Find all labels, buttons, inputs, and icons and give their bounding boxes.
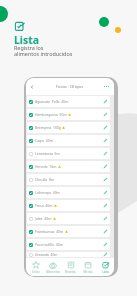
staticText: Pavo trufilla 40m — [35, 242, 63, 247]
staticText: Aguacate Pollo 40m — [35, 99, 69, 104]
staticText: Frutos · 38 tipos — [35, 84, 104, 89]
staticText: Hamburguesa 50m — [35, 112, 67, 117]
button[interactable]: Inicio — [27, 261, 44, 274]
button[interactable]: Hamburguesa 50m — [27, 109, 110, 120]
button[interactable]: Pavo trufilla 40m — [27, 239, 110, 250]
staticText: Menús — [83, 270, 93, 274]
staticText: Jalea 40m — [35, 216, 52, 221]
button[interactable]: Fresa 40m — [27, 200, 110, 211]
button[interactable]: Edit — [103, 151, 108, 156]
button[interactable]: Jalea 40m — [27, 213, 110, 224]
staticText: Recetas — [65, 270, 76, 274]
button[interactable]: Edit — [103, 229, 108, 234]
button[interactable]: Chirulla 8m — [27, 174, 110, 185]
button[interactable]: Recetas — [62, 261, 79, 274]
staticText: Alimentos — [46, 270, 60, 274]
button[interactable]: Edit — [103, 252, 108, 257]
button[interactable]: Granada 40m — [27, 252, 110, 257]
staticText: Lista — [102, 270, 109, 274]
button[interactable]: Edit — [103, 242, 108, 247]
button[interactable]: Edit — [103, 203, 108, 208]
staticText: Hervido 16m — [35, 164, 57, 169]
button[interactable]: Berenjena 100g — [27, 122, 110, 133]
button[interactable]: More options — [104, 86, 111, 87]
button[interactable]: Edit — [103, 190, 108, 195]
button[interactable]: Frambuesas 40m — [27, 226, 110, 237]
button[interactable]: Menús — [79, 261, 96, 274]
button[interactable]: Aguacate Pollo 40m — [27, 96, 110, 107]
button[interactable]: Caqui 40m — [27, 135, 110, 146]
button[interactable]: Edit — [103, 216, 108, 221]
button[interactable]: Edit — [103, 99, 108, 104]
button[interactable]: Edit — [103, 177, 108, 182]
staticText: Lista — [14, 33, 40, 47]
staticText: Granada 40m — [35, 252, 58, 257]
button[interactable]: Edit — [103, 138, 108, 143]
staticText: Inicio — [32, 270, 40, 274]
staticText: Frambuesas 40m — [35, 229, 64, 234]
button[interactable]: Lenantosta 6m — [27, 148, 110, 159]
button[interactable]: Alimentos — [44, 261, 61, 274]
staticText: Lichimaya 40m — [35, 190, 60, 195]
button[interactable]: Hervido 16m — [27, 161, 110, 172]
staticText: Lenantosta 6m — [35, 151, 60, 156]
staticText: Fresa 40m — [35, 203, 53, 208]
button[interactable]: Lichimaya 40m — [27, 187, 110, 198]
button[interactable]: Lista — [97, 261, 114, 274]
staticText: Caqui 40m — [35, 138, 53, 143]
staticText: Berenjena 100g — [35, 125, 61, 130]
button[interactable]: Edit — [103, 164, 108, 169]
button[interactable]: Back — [29, 84, 35, 90]
button[interactable]: Edit — [103, 112, 108, 117]
staticText: Chirulla 8m — [35, 177, 55, 182]
button[interactable]: Edit — [103, 125, 108, 130]
staticText: Registra los alimentos introducidos — [14, 44, 73, 58]
